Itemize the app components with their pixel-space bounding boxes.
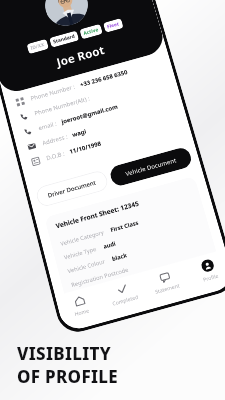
other: Phone	[23, 127, 33, 136]
button[interactable]: Home	[55, 284, 106, 328]
button[interactable]: Phone	[23, 89, 169, 136]
other: Home	[73, 295, 86, 307]
button[interactable]: Date of birth	[31, 119, 178, 166]
staticText: Phone Number :	[30, 83, 76, 102]
staticText: Statement	[154, 282, 181, 296]
other: Statement	[159, 271, 171, 284]
staticText: Phone Number(Alt) :	[34, 94, 91, 117]
staticText: joeroot@gmail.com	[61, 103, 119, 126]
staticText: Vehicle Front Sheet: 12345	[55, 199, 140, 230]
button[interactable]: Fleet	[106, 21, 120, 30]
staticText: Completed	[112, 294, 139, 308]
staticText: Registration Postcode	[70, 265, 130, 289]
staticText: Vehicle Document	[125, 156, 177, 178]
staticText: Active	[83, 26, 100, 37]
staticText: Standard	[52, 33, 76, 45]
staticText: Home	[74, 307, 91, 318]
staticText: OF PROFILE	[17, 365, 119, 388]
staticText: Profile	[202, 272, 220, 284]
button[interactable]: Statement	[140, 261, 192, 304]
staticText: Driver Document	[47, 178, 97, 200]
staticText: Vehicle Colour	[67, 257, 106, 275]
staticText: VISIBILITY	[17, 342, 111, 365]
other: Email	[27, 142, 37, 151]
other: Completed	[116, 283, 129, 296]
staticText: Address :	[41, 133, 68, 147]
staticText: Joe Root	[55, 42, 106, 69]
staticText: ID/XX	[30, 41, 46, 52]
button[interactable]: Profile	[183, 249, 225, 292]
button[interactable]: Active	[83, 26, 100, 37]
button[interactable]: Vehicle Document	[108, 146, 194, 188]
staticText: Vehicle Category	[59, 228, 105, 248]
button[interactable]: Standard	[52, 33, 76, 45]
staticText: D.O.B :	[45, 150, 66, 162]
staticText: +33 236 658 6350	[79, 68, 129, 89]
button[interactable]: Contact	[15, 59, 161, 106]
button[interactable]: Driver Document	[34, 169, 110, 208]
staticText: First Class	[109, 218, 140, 234]
button[interactable]: ID/XX	[30, 41, 46, 52]
staticText: audi	[102, 239, 117, 251]
other: Date of birth	[31, 157, 41, 166]
button[interactable]: Phone	[19, 74, 165, 121]
staticText: wagi	[71, 127, 88, 139]
staticText: 11/10/1998	[69, 139, 102, 156]
other: Contact	[15, 97, 25, 106]
staticText: black	[111, 251, 128, 263]
staticText: Fleet	[106, 21, 120, 30]
staticText: email :	[38, 120, 58, 132]
other: Phone	[19, 112, 29, 121]
staticText: Vehicle Type	[63, 245, 98, 262]
button[interactable]: Email	[27, 104, 173, 151]
other: Profile	[200, 258, 215, 273]
button[interactable]: Completed	[98, 273, 149, 316]
